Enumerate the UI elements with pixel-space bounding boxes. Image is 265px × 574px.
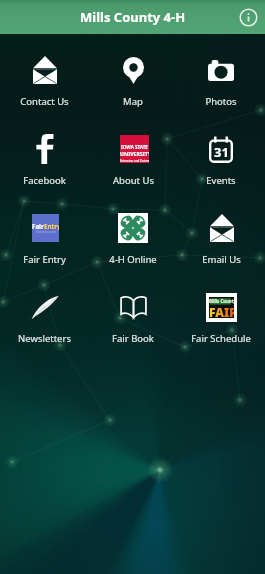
button[interactable]: Email Us [177, 192, 265, 271]
staticText: Fair [32, 222, 44, 230]
button[interactable]: Facebook [0, 113, 89, 192]
staticText: UNIVERSITY [120, 150, 149, 157]
staticText: Mills County [209, 298, 234, 304]
staticText: Entry [44, 222, 59, 230]
staticText: About Us [113, 174, 154, 187]
staticText: IOWA STATE [121, 144, 148, 150]
staticText: Facebook [23, 174, 66, 187]
staticText: 4-H Online [109, 253, 157, 266]
staticText: 31 [214, 143, 229, 161]
button[interactable]: Fair Book [89, 271, 177, 350]
button[interactable]: Mills County [177, 271, 265, 350]
staticText: Fair Book [112, 332, 154, 345]
staticText: fairentry.com [36, 230, 56, 234]
button[interactable]: 31 [177, 113, 265, 192]
staticText: Email Us [202, 253, 241, 266]
staticText: Fair Entry [23, 253, 66, 266]
staticText: Contact Us [20, 95, 69, 108]
staticText: Extension and Outreach [120, 159, 149, 163]
button[interactable]: Map [89, 34, 177, 113]
staticText: Events [206, 174, 236, 187]
staticText: Newsletters [18, 332, 71, 345]
button[interactable]: Photos [177, 34, 265, 113]
staticText: Photos [205, 95, 237, 108]
staticText: FAIR [209, 304, 234, 318]
button[interactable]: 4-H Online [89, 192, 177, 271]
button[interactable]: Contact Us [0, 34, 89, 113]
staticText: Mills County 4-H [80, 8, 186, 26]
staticText: Map [123, 95, 143, 108]
button[interactable]: Newsletters [0, 271, 89, 350]
button[interactable]: Fair [0, 192, 89, 271]
button[interactable]: Info [231, 0, 265, 34]
button[interactable]: IOWA STATE [89, 113, 177, 192]
staticText: Fair Schedule [191, 332, 251, 345]
